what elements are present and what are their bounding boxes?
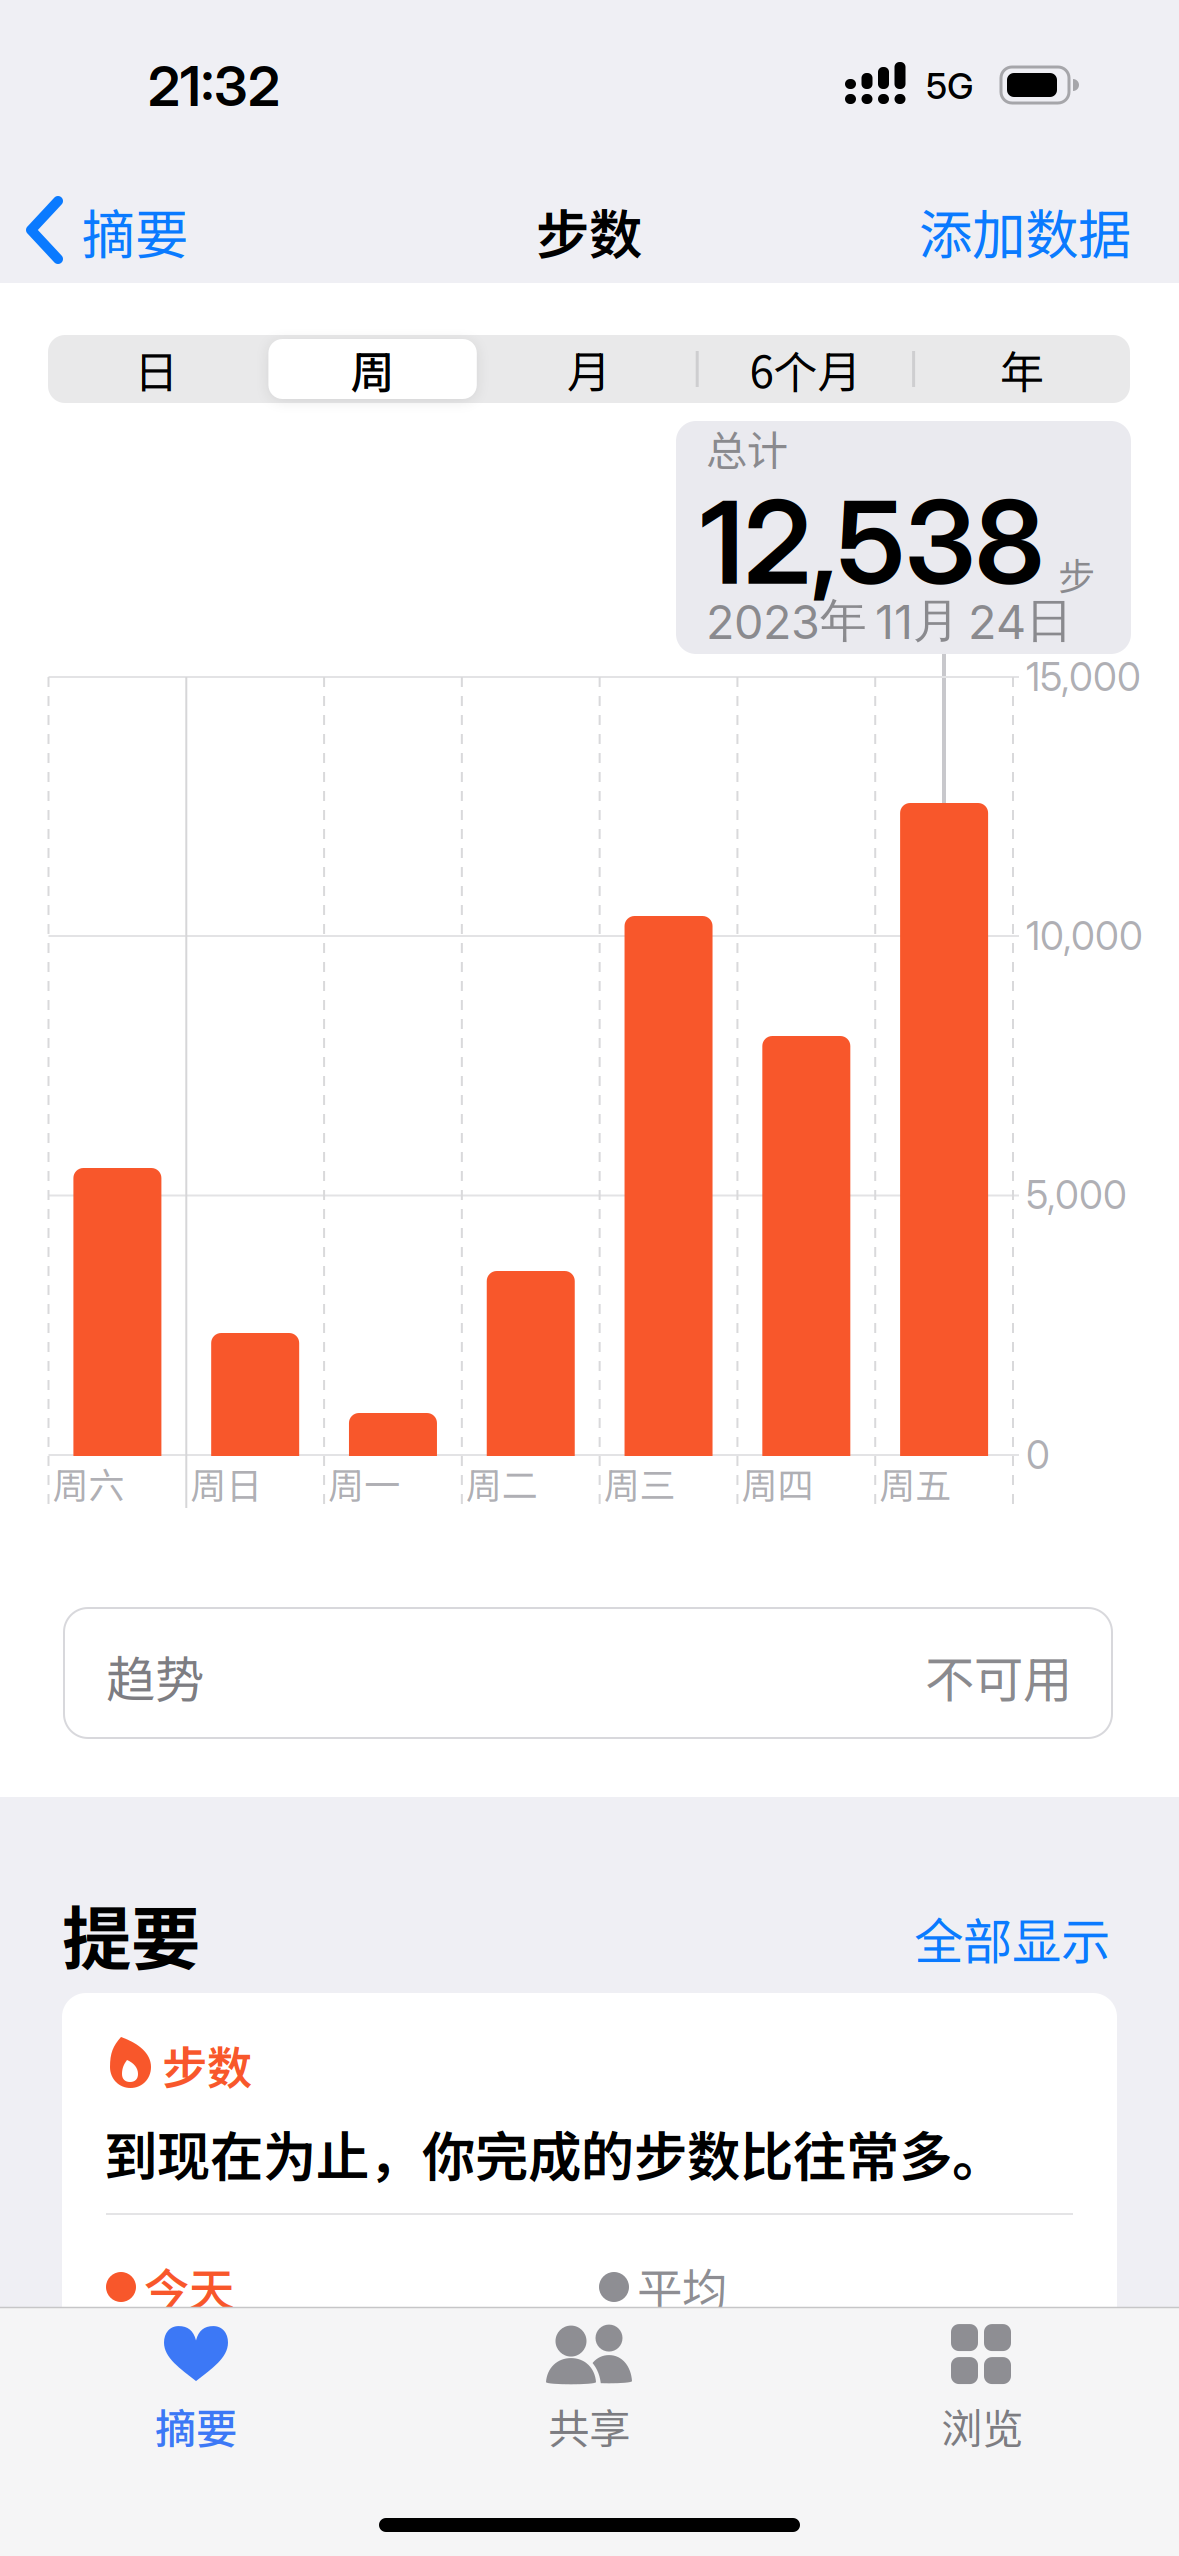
staticText: 今天 <box>144 2254 234 2320</box>
staticText: 周一 <box>328 1457 400 1509</box>
staticText: 浏览 <box>941 2396 1023 2456</box>
staticText: 周日 <box>190 1457 262 1509</box>
staticText: 6个月 <box>749 337 861 401</box>
button[interactable]: 浏览 <box>941 2324 1023 2456</box>
staticText: 全部显示 <box>914 1902 1110 1974</box>
staticText: 趋势 <box>106 1640 204 1712</box>
button[interactable]: 共享 <box>546 2324 632 2456</box>
staticText: 到现在为止，你完成的步数比往常多。 <box>104 2114 1005 2192</box>
button[interactable]: 月 <box>481 335 697 403</box>
staticText: 总计 <box>706 418 788 478</box>
staticText: 共享 <box>548 2396 630 2456</box>
staticText: 15,000 <box>1026 654 1141 700</box>
staticText: 步数 <box>162 2032 252 2098</box>
staticText: 步数 <box>536 192 642 270</box>
staticText: 添加数据 <box>919 192 1131 270</box>
staticText: 5G <box>926 64 974 108</box>
button[interactable]: 添加数据 <box>919 192 1131 270</box>
staticText: 周五 <box>879 1457 951 1509</box>
staticText: 摘要 <box>155 2396 237 2456</box>
staticText: 12,538 <box>700 473 1044 611</box>
button[interactable]: 摘要 <box>155 2324 237 2456</box>
staticText: 周 <box>351 337 395 401</box>
button[interactable]: 全部显示 <box>914 1902 1110 1974</box>
staticText: 步 <box>1058 547 1095 601</box>
staticText: 日 <box>134 337 178 401</box>
button[interactable]: 返回摘要 <box>26 192 188 270</box>
staticText: 周六 <box>52 1457 124 1509</box>
staticText: 周三 <box>604 1457 676 1509</box>
staticText: 提要 <box>62 1884 200 1984</box>
staticText: 年 <box>1000 337 1044 401</box>
staticText: 21:32 <box>148 53 280 119</box>
staticText: 2023年 11月 24日 <box>706 592 1073 650</box>
staticText: 5,000 <box>1026 1172 1127 1218</box>
staticText: 摘要 <box>82 192 188 270</box>
button[interactable]: 6个月 <box>697 335 914 403</box>
staticText: 0 <box>1026 1432 1050 1478</box>
staticText: 不可用 <box>925 1640 1072 1712</box>
button[interactable]: 日 <box>48 335 264 403</box>
staticText: 周二 <box>466 1457 538 1509</box>
staticText: 平均 <box>637 2254 727 2320</box>
staticText: 月 <box>567 337 611 401</box>
button[interactable]: 周 <box>264 335 481 403</box>
staticText: 周四 <box>741 1457 813 1509</box>
button[interactable]: 年 <box>914 335 1130 403</box>
staticText: 10,000 <box>1026 913 1143 959</box>
